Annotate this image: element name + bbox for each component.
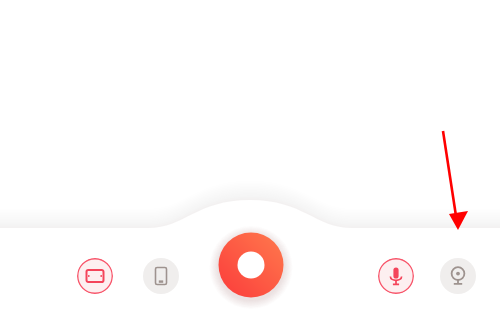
button[interactable]: Webcam	[440, 258, 476, 294]
button[interactable]: Phone	[143, 258, 179, 294]
button[interactable]: Screen recording	[77, 258, 113, 294]
button[interactable]: Record	[218, 232, 284, 298]
button[interactable]: Microphone	[378, 258, 414, 294]
